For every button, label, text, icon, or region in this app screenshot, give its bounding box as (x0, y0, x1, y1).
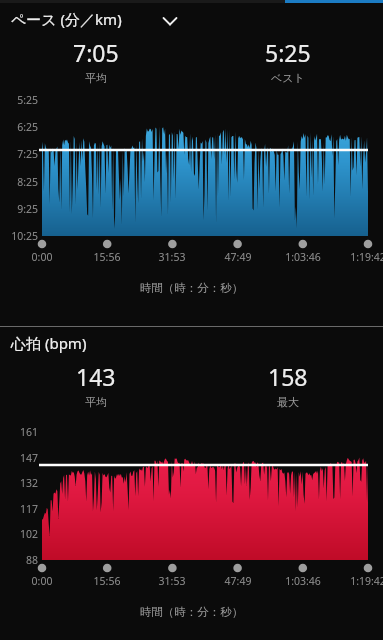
staticText: 1:03:46 (273, 250, 333, 264)
staticText: 47:49 (208, 250, 268, 264)
staticText: 0:00 (12, 250, 72, 264)
staticText: 7:05 (73, 37, 119, 68)
staticText: 102 (0, 527, 38, 541)
staticText: 15:56 (77, 250, 137, 264)
staticText: 88 (0, 553, 38, 567)
button[interactable]: ペース (分／km) (0, 3, 383, 326)
staticText: 1:19:42 (338, 574, 383, 588)
staticText: 5:25 (265, 37, 311, 68)
staticText: 5:25 (0, 93, 38, 107)
button[interactable]: 心拍 (bpm) (0, 327, 383, 640)
staticText: 0:00 (12, 574, 72, 588)
staticText: 117 (0, 502, 38, 516)
staticText: 10:25 (0, 229, 38, 243)
staticText: 時間（時：分：秒） (0, 281, 383, 295)
button[interactable]: Change metric (159, 10, 181, 32)
staticText: 時間（時：分：秒） (0, 605, 383, 619)
staticText: 8:25 (0, 175, 38, 189)
staticText: 1:19:42 (338, 250, 383, 264)
button[interactable]: ペース (分／km) (11, 9, 122, 29)
staticText: 6:25 (0, 120, 38, 134)
staticText: 最大 (277, 395, 299, 409)
staticText: 15:56 (77, 574, 137, 588)
staticText: 47:49 (208, 574, 268, 588)
staticText: 31:53 (142, 250, 202, 264)
staticText: 158 (268, 361, 308, 392)
staticText: 平均 (85, 71, 107, 85)
staticText: 心拍 (bpm) (11, 333, 87, 353)
staticText: 161 (0, 425, 38, 439)
staticText: 31:53 (142, 574, 202, 588)
staticText: ペース (分／km) (11, 9, 122, 29)
staticText: 9:25 (0, 202, 38, 216)
staticText: 1:03:46 (273, 574, 333, 588)
button[interactable]: 心拍 (bpm) (11, 333, 87, 353)
staticText: 132 (0, 476, 38, 490)
staticText: 143 (76, 361, 116, 392)
staticText: 7:25 (0, 147, 38, 161)
staticText: 平均 (85, 395, 107, 409)
staticText: 147 (0, 451, 38, 465)
staticText: ベスト (271, 71, 305, 85)
